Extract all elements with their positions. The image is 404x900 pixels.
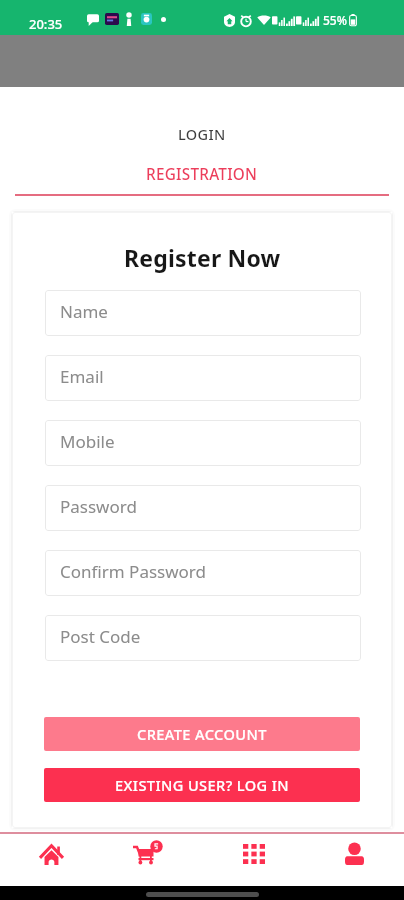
button[interactable]: Email (45, 355, 361, 401)
staticText: Name (60, 300, 108, 323)
staticText: Confirm Password (60, 560, 206, 583)
staticText: Post Code (60, 625, 141, 648)
button[interactable]: Categories (202, 834, 303, 886)
staticText: Register Now (124, 242, 281, 273)
button[interactable]: LOGIN (0, 117, 404, 151)
staticText: EXISTING USER? LOG IN (115, 775, 290, 795)
button[interactable]: REGISTRATION (0, 157, 404, 191)
button[interactable]: Cart, 5 items (101, 834, 202, 886)
staticText: Mobile (60, 430, 115, 453)
button[interactable]: Home (0, 834, 101, 886)
staticText: Email (60, 365, 104, 388)
staticText: Password (60, 495, 137, 518)
button[interactable]: Mobile (45, 420, 361, 466)
staticText: 55% (323, 12, 347, 28)
button[interactable]: Name (45, 290, 361, 336)
button[interactable]: Password (45, 485, 361, 531)
staticText: 20:35 (29, 15, 63, 33)
staticText: LOGIN (178, 124, 226, 144)
staticText: REGISTRATION (146, 164, 258, 185)
button[interactable]: Profile (303, 834, 404, 886)
button[interactable]: CREATE ACCOUNT (44, 717, 360, 751)
staticText: CREATE ACCOUNT (137, 724, 267, 744)
button[interactable]: EXISTING USER? LOG IN (44, 768, 360, 802)
button[interactable]: Post Code (45, 615, 361, 661)
button[interactable]: Confirm Password (45, 550, 361, 596)
